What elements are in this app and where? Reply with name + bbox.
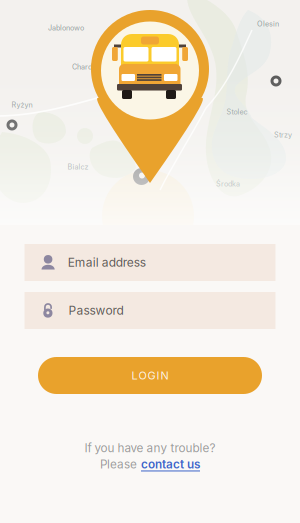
staticText: Password [68, 303, 123, 318]
staticText: Strzy [274, 131, 292, 139]
staticText: Bialcz [67, 163, 88, 171]
staticText: Olesin [257, 20, 279, 28]
staticText: Jablonowo [48, 24, 84, 32]
staticText: Email address [68, 255, 146, 270]
button[interactable]: L O G I N [38, 357, 262, 394]
button[interactable]: contact us [141, 457, 200, 471]
staticText: L O G I N [131, 369, 168, 382]
staticText: Please [100, 457, 137, 471]
staticText: Chard [72, 63, 92, 71]
staticText: Stolec [226, 108, 247, 116]
staticText: contact us [141, 457, 200, 471]
staticText: Środka [216, 180, 240, 188]
staticText: Ryżyn [11, 101, 32, 109]
staticText: If you have any trouble? [84, 441, 215, 455]
